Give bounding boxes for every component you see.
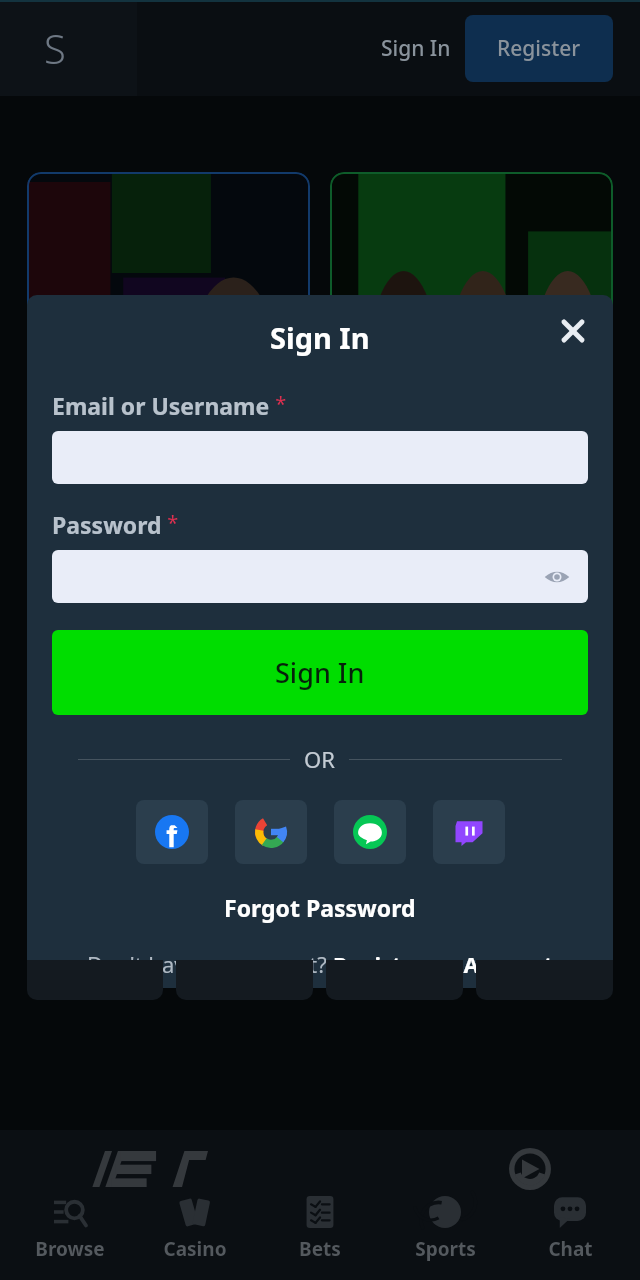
- button[interactable]: [330, 172, 613, 502]
- button[interactable]: Register an Account: [333, 949, 554, 979]
- button[interactable]: Chat: [515, 1192, 625, 1266]
- staticText: Casino: [163, 1236, 227, 1262]
- staticText: Sports: [415, 1236, 476, 1262]
- staticText: Chat: [548, 1236, 593, 1262]
- button[interactable]: [27, 172, 310, 502]
- button[interactable]: Show password: [540, 560, 574, 594]
- button[interactable]: Google: [235, 800, 307, 864]
- button[interactable]: Facebook: [136, 800, 208, 864]
- staticText: Register an Account: [333, 949, 554, 979]
- button[interactable]: Forgot Password: [218, 886, 422, 929]
- staticText: Sign In: [270, 318, 370, 357]
- staticText: Forgot Password: [224, 892, 416, 923]
- button[interactable]: Twitch: [433, 800, 505, 864]
- button[interactable]: Sports: [390, 1192, 500, 1266]
- button[interactable]: Close: [551, 309, 595, 353]
- staticText: *: [270, 390, 287, 417]
- staticText: Bets: [299, 1236, 341, 1262]
- staticText: S: [44, 21, 66, 75]
- button[interactable]: Sign In: [367, 18, 465, 79]
- staticText: Sign In: [275, 654, 365, 691]
- button[interactable]: Register: [465, 15, 613, 82]
- button[interactable]: Show password: [52, 550, 588, 603]
- staticText: OR: [304, 744, 335, 774]
- button[interactable]: Browse: [15, 1192, 125, 1266]
- staticText: Register: [497, 34, 581, 63]
- staticText: Password: [52, 509, 162, 540]
- staticText: Browse: [35, 1236, 105, 1262]
- staticText: Email or Username: [52, 390, 270, 421]
- button[interactable]: [52, 431, 588, 484]
- button[interactable]: Bets: [265, 1192, 375, 1266]
- button[interactable]: Sign In: [52, 630, 588, 715]
- staticText: *: [162, 509, 179, 536]
- staticText: Don't have an account?: [87, 949, 333, 979]
- button[interactable]: LINE: [334, 800, 406, 864]
- button[interactable]: Casino: [140, 1192, 250, 1266]
- staticText: Sign In: [381, 34, 451, 63]
- button[interactable]: Home: [14, 7, 96, 89]
